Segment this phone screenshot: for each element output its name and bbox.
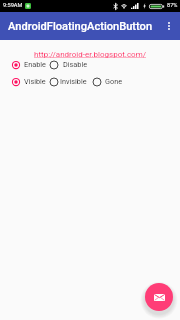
button[interactable]: Compose email <box>145 283 173 311</box>
staticText: AndroidFloatingActionButton <box>8 20 153 33</box>
staticText: Invisible <box>60 77 87 86</box>
button[interactable]: Disable <box>47 57 82 72</box>
button[interactable]: More options <box>160 12 178 40</box>
staticText: Gone <box>105 77 123 86</box>
staticText: Disable <box>63 60 88 69</box>
staticText: 9:59AM <box>3 2 23 9</box>
staticText: Enable <box>24 60 46 69</box>
button[interactable]: Invisible <box>47 74 84 89</box>
staticText: Visible <box>24 77 46 86</box>
button[interactable]: Visible <box>9 74 41 89</box>
button[interactable]: http://android-er.blogspot.com/ <box>34 50 146 59</box>
button[interactable]: Enable <box>9 57 41 72</box>
button[interactable]: Gone <box>90 74 118 89</box>
staticText: 87% <box>167 2 178 9</box>
